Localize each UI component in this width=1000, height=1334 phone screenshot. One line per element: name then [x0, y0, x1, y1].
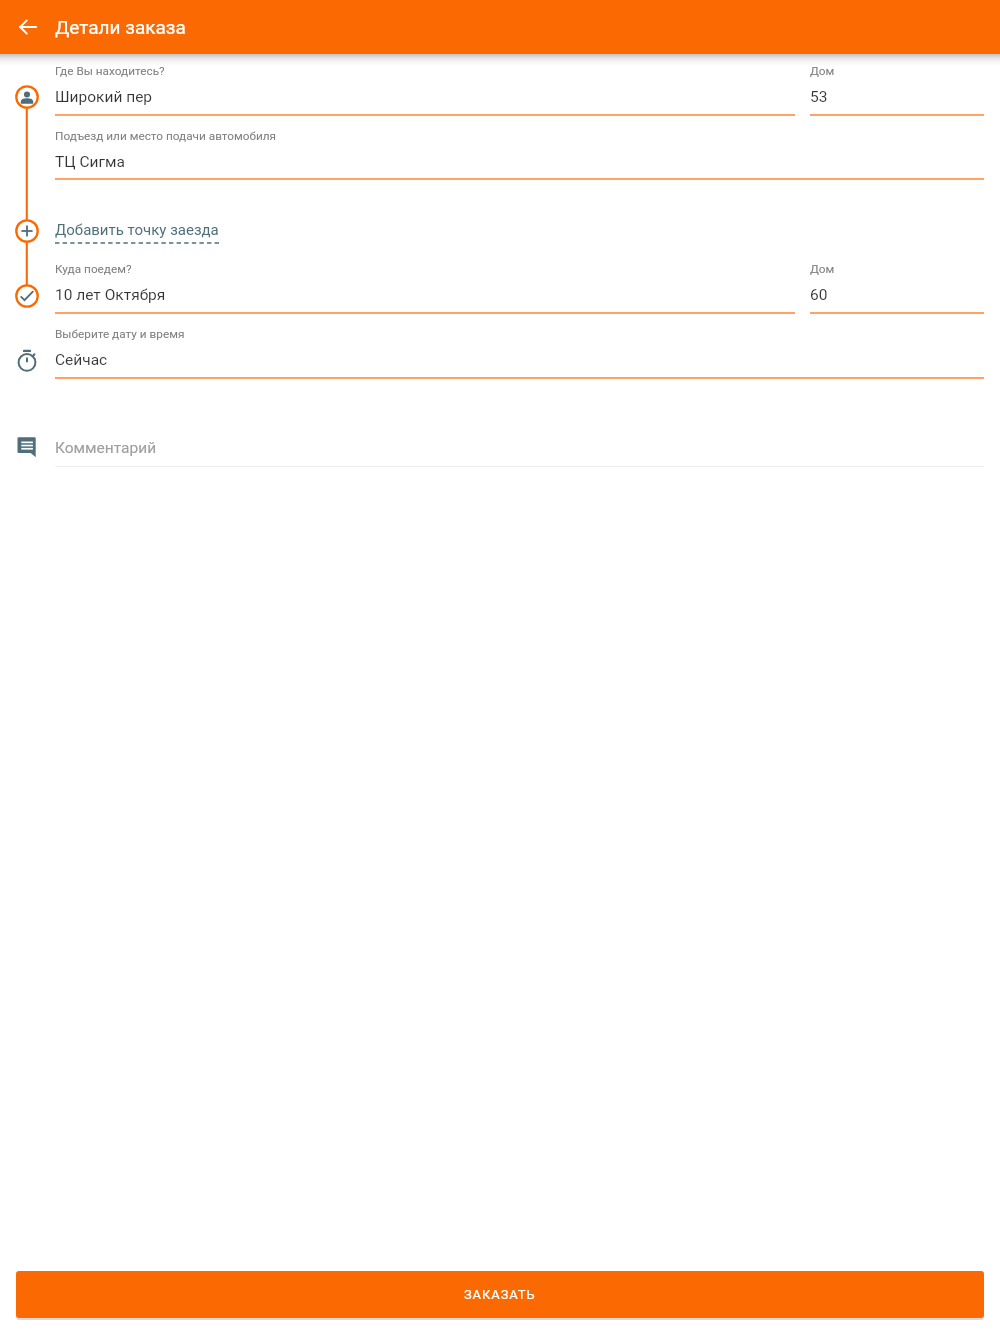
button[interactable]: ЗАКАЗАТЬ: [16, 1271, 984, 1318]
staticText: Дом: [810, 262, 835, 276]
button[interactable]: Добавить точку заезда: [55, 221, 220, 247]
button[interactable]: Куда поедем?: [55, 262, 795, 314]
button[interactable]: Подъезд или место подачи автомобиля: [55, 129, 984, 180]
staticText: Выберите дату и время: [55, 327, 185, 341]
button[interactable]: Дом: [810, 64, 984, 116]
staticText: Комментарий: [55, 439, 157, 457]
button[interactable]: Где Вы находитесь?: [55, 64, 795, 116]
button[interactable]: Time: [10, 344, 44, 378]
button[interactable]: Pickup point: [10, 80, 44, 114]
staticText: Широкий пер: [55, 88, 153, 106]
staticText: ТЦ Сигма: [55, 153, 125, 171]
staticText: Сейчас: [55, 351, 108, 369]
staticText: ЗАКАЗАТЬ: [464, 1287, 536, 1302]
button[interactable]: Дом: [810, 262, 984, 314]
staticText: Дом: [810, 64, 835, 78]
staticText: 53: [810, 88, 828, 106]
button[interactable]: Add stop: [10, 214, 44, 248]
button[interactable]: Comment: [10, 431, 44, 465]
staticText: 60: [810, 286, 828, 304]
staticText: Детали заказа: [55, 16, 186, 38]
button[interactable]: Destination: [10, 279, 44, 313]
staticText: Где Вы находитесь?: [55, 64, 165, 78]
button[interactable]: Back: [0, 0, 56, 54]
staticText: Подъезд или место подачи автомобиля: [55, 129, 276, 143]
staticText: 10 лет Октября: [55, 286, 166, 304]
staticText: Добавить точку заезда: [55, 221, 219, 239]
button[interactable]: Выберите дату и время: [55, 327, 984, 379]
button[interactable]: Комментарий: [55, 439, 984, 467]
staticText: Куда поедем?: [55, 262, 132, 276]
